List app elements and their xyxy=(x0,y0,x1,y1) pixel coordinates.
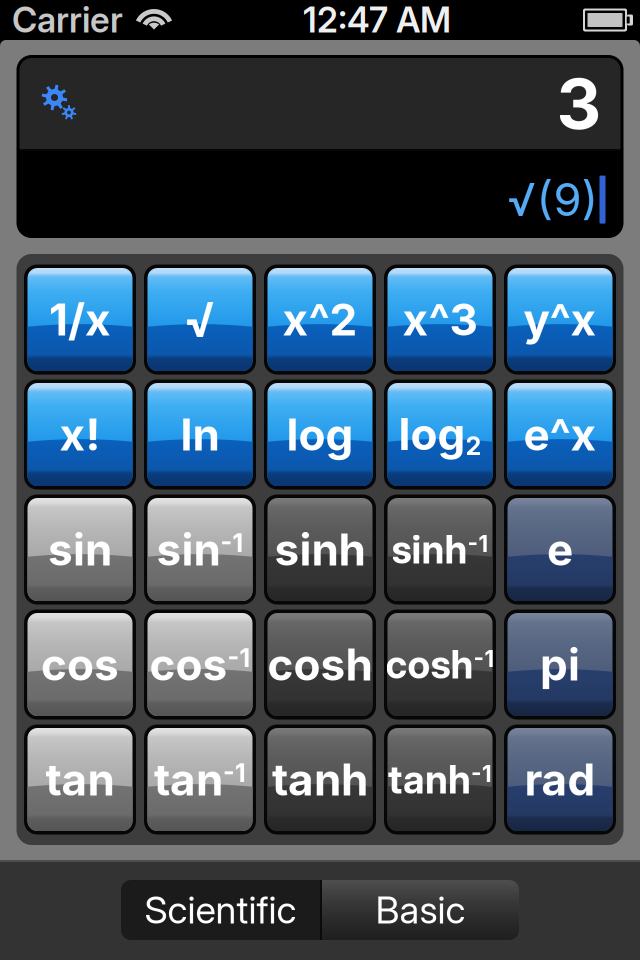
staticText: x^3 xyxy=(402,293,477,346)
staticText: pi xyxy=(540,638,580,691)
button[interactable]: ln xyxy=(144,379,256,489)
button[interactable]: y^x xyxy=(504,264,616,374)
staticText: cos-1 xyxy=(149,638,250,690)
button[interactable]: cos-1 xyxy=(144,609,256,719)
staticText: Basic xyxy=(375,887,465,933)
staticText: e^x xyxy=(523,408,596,461)
staticText: ln xyxy=(180,408,219,461)
button[interactable]: x^2 xyxy=(264,264,376,374)
staticText: Scientific xyxy=(144,887,296,933)
staticText: cosh xyxy=(267,638,372,691)
staticText: x^2 xyxy=(282,293,357,346)
staticText: sin xyxy=(48,523,112,576)
staticText: tanh-1 xyxy=(388,757,492,802)
staticText: tan-1 xyxy=(154,753,246,805)
button[interactable]: x! xyxy=(24,379,136,489)
button[interactable]: tan-1 xyxy=(144,724,256,834)
button[interactable]: log xyxy=(264,379,376,489)
staticText: √ xyxy=(184,290,216,349)
button[interactable]: 1/x xyxy=(24,264,136,374)
staticText: 3 xyxy=(556,62,601,145)
button[interactable]: sin xyxy=(24,494,136,604)
staticText: x! xyxy=(59,408,100,461)
button[interactable]: e xyxy=(504,494,616,604)
staticText: e xyxy=(547,523,573,576)
staticText: cosh-1 xyxy=(385,642,494,687)
staticText: √(9) xyxy=(507,172,598,227)
staticText: rad xyxy=(524,753,595,806)
staticText: sinh-1 xyxy=(391,527,488,572)
button[interactable]: x^3 xyxy=(384,264,496,374)
staticText: sinh xyxy=(274,523,365,576)
staticText: log xyxy=(286,408,353,461)
button[interactable]: sinh xyxy=(264,494,376,604)
button[interactable]: rad xyxy=(504,724,616,834)
button[interactable]: Scientific xyxy=(121,880,320,940)
button[interactable]: Basic xyxy=(322,880,519,940)
staticText: log2 xyxy=(398,408,481,461)
button[interactable]: √ xyxy=(144,264,256,374)
button[interactable]: e^x xyxy=(504,379,616,489)
button[interactable]: sinh-1 xyxy=(384,494,496,604)
button[interactable]: tanh xyxy=(264,724,376,834)
staticText: Carrier xyxy=(12,0,123,41)
staticText: cos xyxy=(41,638,119,691)
staticText: sin-1 xyxy=(156,523,243,575)
button[interactable]: cosh xyxy=(264,609,376,719)
staticText: 1/x xyxy=(49,293,111,346)
button[interactable]: pi xyxy=(504,609,616,719)
button[interactable]: tanh-1 xyxy=(384,724,496,834)
staticText: y^x xyxy=(523,293,596,346)
staticText: 12:47 AM xyxy=(303,0,451,41)
button[interactable]: cosh-1 xyxy=(384,609,496,719)
button[interactable]: sin-1 xyxy=(144,494,256,604)
button[interactable]: log2 xyxy=(384,379,496,489)
staticText: tanh xyxy=(272,753,368,806)
button[interactable]: tan xyxy=(24,724,136,834)
button[interactable]: cos xyxy=(24,609,136,719)
staticText: tan xyxy=(45,753,114,806)
